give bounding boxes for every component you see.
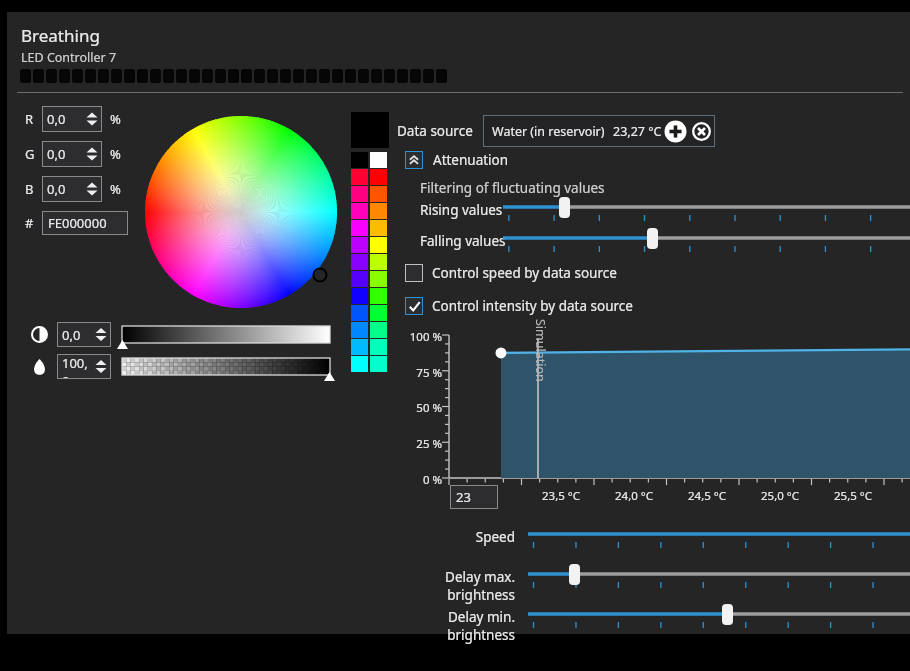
- button[interactable]: [410, 69, 421, 83]
- staticText: #: [25, 214, 42, 232]
- button[interactable]: [397, 69, 408, 83]
- button[interactable]: [503, 231, 910, 253]
- staticText: 25,5 °C: [823, 488, 883, 504]
- button[interactable]: [503, 200, 910, 222]
- button[interactable]: [722, 604, 733, 625]
- button[interactable]: [528, 527, 910, 549]
- button[interactable]: [20, 69, 31, 83]
- button[interactable]: [111, 69, 122, 83]
- button[interactable]: 0,0: [42, 141, 102, 167]
- button[interactable]: [358, 69, 369, 83]
- button[interactable]: Brightness: [31, 326, 48, 343]
- button[interactable]: [254, 69, 265, 83]
- button[interactable]: [345, 69, 356, 83]
- staticText: 100 %: [402, 329, 442, 345]
- button[interactable]: [647, 228, 658, 249]
- staticText: Delay max. brightness: [395, 568, 515, 604]
- button[interactable]: [137, 69, 148, 83]
- staticText: Data source: [397, 122, 473, 140]
- button[interactable]: [46, 69, 57, 83]
- button[interactable]: 23: [450, 485, 498, 509]
- button[interactable]: Remove data source: [692, 120, 711, 143]
- button[interactable]: [150, 69, 161, 83]
- button[interactable]: Opacity: [31, 358, 48, 375]
- button[interactable]: [423, 69, 434, 83]
- staticText: %: [110, 110, 121, 128]
- button[interactable]: [569, 564, 580, 585]
- staticText: 0,0: [62, 326, 95, 344]
- staticText: Falling values: [420, 232, 506, 250]
- button[interactable]: [241, 69, 252, 83]
- button[interactable]: Add data source: [664, 120, 687, 143]
- staticText: LED Controller 7: [21, 49, 117, 66]
- staticText: Breathing: [21, 24, 100, 47]
- button[interactable]: [332, 69, 343, 83]
- button[interactable]: 0,0: [57, 322, 111, 347]
- button[interactable]: [559, 197, 570, 218]
- button[interactable]: [293, 69, 304, 83]
- staticText: 23: [456, 488, 471, 506]
- button[interactable]: [215, 69, 226, 83]
- staticText: 24,0 °C: [604, 488, 664, 504]
- button[interactable]: 100,0: [57, 354, 111, 379]
- button[interactable]: [319, 69, 330, 83]
- button[interactable]: [528, 607, 910, 629]
- button[interactable]: [124, 69, 135, 83]
- button[interactable]: [384, 69, 395, 83]
- button[interactable]: [280, 69, 291, 83]
- button[interactable]: [163, 69, 174, 83]
- staticText: FE000000: [48, 214, 107, 232]
- button[interactable]: [371, 69, 382, 83]
- button[interactable]: [98, 69, 109, 83]
- staticText: 23,27 °C: [613, 123, 662, 140]
- button[interactable]: [59, 69, 70, 83]
- button[interactable]: Water (in reservoir): [483, 115, 715, 147]
- button[interactable]: FE000000: [42, 211, 128, 235]
- button[interactable]: [306, 69, 317, 83]
- button[interactable]: 0,0: [42, 176, 102, 202]
- button[interactable]: [405, 151, 423, 169]
- button[interactable]: [228, 69, 239, 83]
- button[interactable]: [202, 69, 213, 83]
- staticText: Water (in reservoir): [492, 123, 605, 140]
- button[interactable]: [85, 69, 96, 83]
- button[interactable]: [189, 69, 200, 83]
- button[interactable]: [528, 567, 910, 589]
- button[interactable]: [436, 69, 447, 83]
- button[interactable]: Control intensity by data source: [405, 297, 633, 315]
- button[interactable]: Control speed by data source: [405, 264, 617, 282]
- staticText: Filtering of fluctuating values: [420, 179, 605, 197]
- button[interactable]: 0,0: [42, 106, 102, 132]
- button[interactable]: [33, 69, 44, 83]
- button[interactable]: [267, 69, 278, 83]
- button[interactable]: [176, 69, 187, 83]
- button[interactable]: [72, 69, 83, 83]
